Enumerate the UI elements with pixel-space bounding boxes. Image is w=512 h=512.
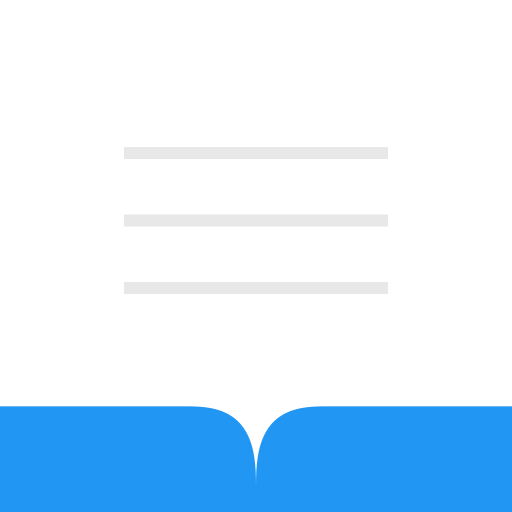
button[interactable]: Books: [0, 0, 512, 512]
